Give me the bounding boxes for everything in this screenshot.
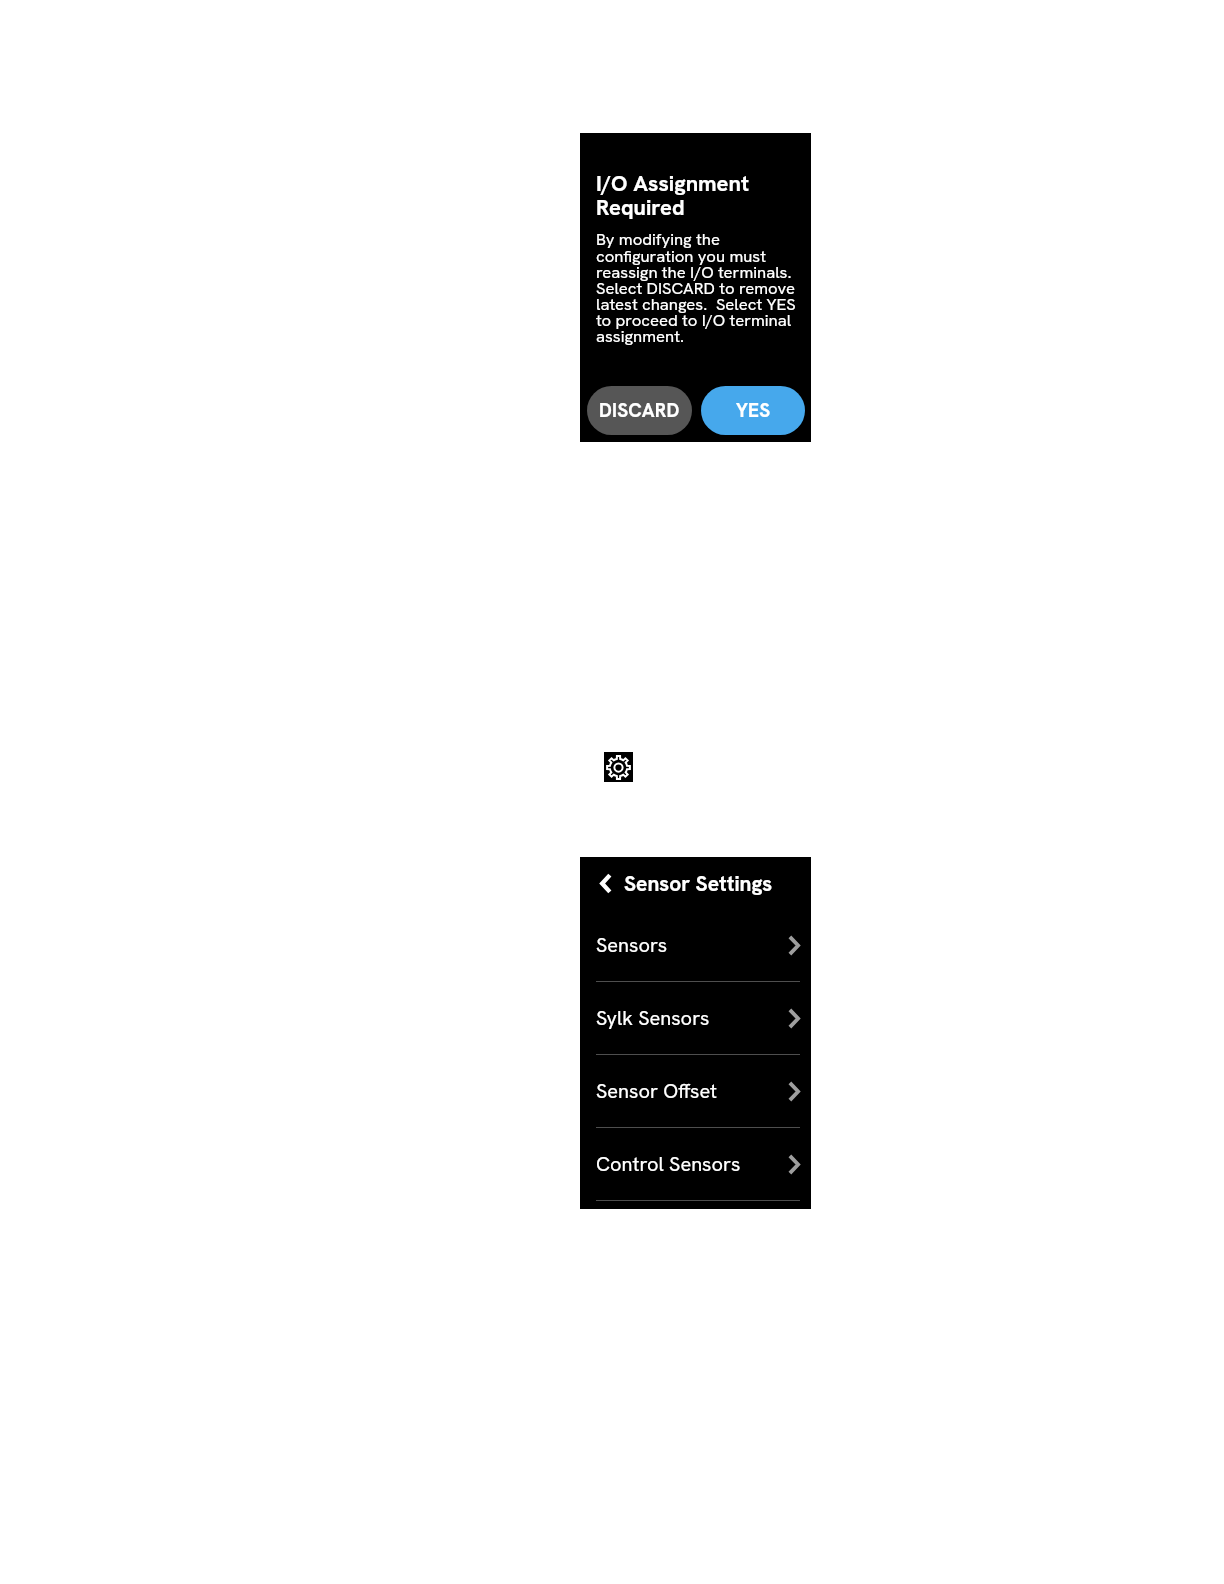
button[interactable]: Sensor Offset bbox=[580, 1055, 811, 1128]
button[interactable]: YES bbox=[701, 386, 805, 435]
button[interactable]: Back bbox=[580, 857, 811, 909]
button[interactable]: DISCARD bbox=[587, 386, 692, 435]
staticText: Sensor Settings bbox=[624, 870, 773, 897]
staticText: Sensors bbox=[596, 932, 668, 958]
button[interactable]: Sensors bbox=[580, 909, 811, 982]
staticText: YES bbox=[736, 398, 771, 423]
staticText: Control Sensors bbox=[596, 1151, 741, 1177]
button[interactable]: Sylk Sensors bbox=[580, 982, 811, 1055]
staticText: Sensor Offset bbox=[596, 1078, 718, 1104]
staticText: By modifying the configuration you must … bbox=[596, 228, 803, 347]
staticText: DISCARD bbox=[599, 398, 680, 423]
button[interactable]: Settings bbox=[604, 752, 633, 782]
staticText: Sylk Sensors bbox=[596, 1005, 710, 1031]
staticText: I/O Assignment Required bbox=[596, 169, 749, 222]
button[interactable]: Control Sensors bbox=[580, 1128, 811, 1201]
other: Back bbox=[600, 873, 612, 894]
